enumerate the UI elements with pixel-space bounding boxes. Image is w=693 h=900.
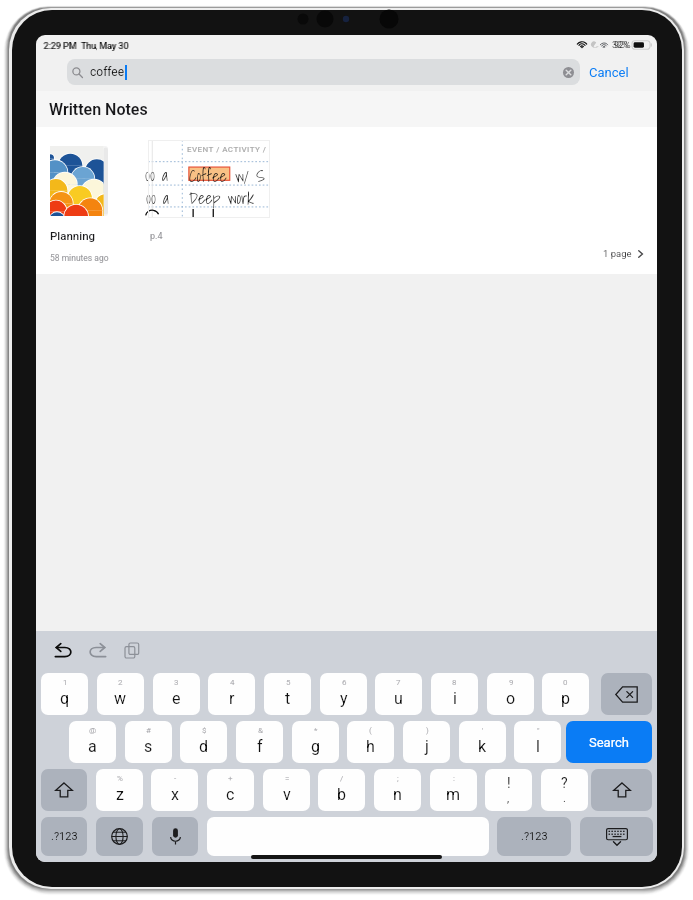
button[interactable]: ' [459, 721, 506, 763]
staticText: 1 [63, 678, 68, 687]
staticText: 58 minutes ago [50, 253, 109, 263]
staticText: g [311, 737, 320, 756]
staticText: ( [369, 726, 372, 735]
staticText: 92% [614, 40, 631, 51]
staticText: n [393, 785, 402, 804]
button[interactable]: $ [180, 721, 227, 763]
button[interactable]: ; [374, 769, 421, 811]
staticText: q [60, 689, 70, 708]
button[interactable]: Undo [50, 637, 76, 663]
staticText: a [88, 737, 97, 756]
staticText: $ [202, 726, 207, 735]
button[interactable]: % [96, 769, 143, 811]
button[interactable]: 6 [320, 673, 367, 715]
staticText: Written Notes [49, 100, 148, 119]
button[interactable]: : [430, 769, 477, 811]
button[interactable]: 1 [41, 673, 88, 715]
button[interactable]: ( [347, 721, 394, 763]
button[interactable]: 1 page [599, 244, 647, 263]
button[interactable]: Shift [591, 769, 652, 811]
button[interactable]: Search [566, 721, 652, 763]
button[interactable]: .?123 [497, 817, 571, 856]
staticText: 1 page [603, 248, 632, 259]
button[interactable]: Paste [119, 637, 145, 663]
button[interactable]: Cancel [585, 57, 633, 87]
staticText: * [314, 726, 318, 735]
staticText: ? [561, 775, 568, 791]
staticText: t [285, 689, 291, 708]
staticText: # [146, 726, 151, 735]
staticText: ; [397, 774, 399, 783]
staticText: c [226, 785, 235, 804]
staticText: z [116, 785, 124, 804]
button[interactable]: Shift [41, 769, 87, 811]
staticText: 9 [509, 678, 514, 687]
staticText: h [366, 737, 375, 756]
button[interactable]: 9 [487, 673, 534, 715]
button[interactable]: 8 [431, 673, 478, 715]
button[interactable]: Switch keyboard [96, 817, 143, 856]
staticText: l [536, 737, 540, 756]
staticText: 4 [230, 678, 235, 687]
staticText: 3 [174, 678, 179, 687]
button[interactable]: Backspace [601, 673, 652, 715]
button[interactable]: " [514, 721, 561, 763]
button[interactable]: ) [403, 721, 450, 763]
staticText: 0 [563, 678, 568, 687]
staticText: 2:29 PM Thu May 30 [44, 41, 129, 52]
button[interactable]: Dictation [152, 817, 198, 856]
staticText: 6 [342, 678, 347, 687]
staticText: w/ S [235, 163, 265, 189]
staticText: + [228, 774, 233, 783]
button[interactable]: + [207, 769, 254, 811]
staticText: ! [507, 775, 511, 791]
staticText: Coffee [189, 163, 227, 189]
staticText: 2 [118, 678, 123, 687]
button[interactable]: Hide keyboard [580, 817, 653, 856]
button[interactable]: - [151, 769, 198, 811]
staticText: ' [482, 726, 484, 735]
button[interactable]: = [263, 769, 310, 811]
button[interactable]: ? [541, 769, 588, 811]
staticText: i [453, 689, 457, 708]
button[interactable]: Planning [36, 127, 657, 274]
button[interactable]: coffee [67, 59, 580, 85]
staticText: 32% [612, 40, 629, 51]
staticText: 2:29 PM Thu, May 30 [43, 41, 129, 52]
button[interactable]: 0 [542, 673, 589, 715]
staticText: d [199, 737, 209, 756]
staticText: f [257, 737, 263, 756]
button[interactable]: 7 [375, 673, 422, 715]
staticText: m [446, 785, 461, 804]
button[interactable]: 3 [153, 673, 200, 715]
button[interactable]: Redo [84, 637, 110, 663]
button[interactable]: / [318, 769, 365, 811]
staticText: 5 [286, 678, 291, 687]
button[interactable]: @ [69, 721, 116, 763]
button[interactable]: ! [485, 769, 532, 811]
staticText: .?123 [521, 830, 548, 843]
button[interactable]: 5 [264, 673, 311, 715]
button[interactable]: 2 [97, 673, 144, 715]
staticText: p [561, 689, 570, 708]
staticText: 00 a [145, 162, 168, 188]
button[interactable]: * [292, 721, 339, 763]
staticText: EVENT / ACTIVITY / [187, 145, 269, 154]
button[interactable]: & [236, 721, 283, 763]
staticText: .?123 [51, 830, 78, 843]
staticText: r [229, 689, 235, 708]
staticText: Planning [50, 229, 96, 242]
staticText: u [394, 689, 403, 708]
staticText: : [453, 774, 455, 783]
button[interactable]: Space [207, 817, 489, 856]
staticText: - [174, 774, 177, 783]
button[interactable]: 4 [208, 673, 255, 715]
button[interactable]: .?123 [41, 817, 87, 856]
staticText: & [258, 726, 263, 735]
staticText: 7 [396, 678, 401, 687]
staticText: , [507, 792, 510, 805]
button[interactable]: # [125, 721, 172, 763]
staticText: " [537, 726, 540, 735]
staticText: Cancel [589, 65, 629, 80]
staticText: y [340, 689, 348, 708]
